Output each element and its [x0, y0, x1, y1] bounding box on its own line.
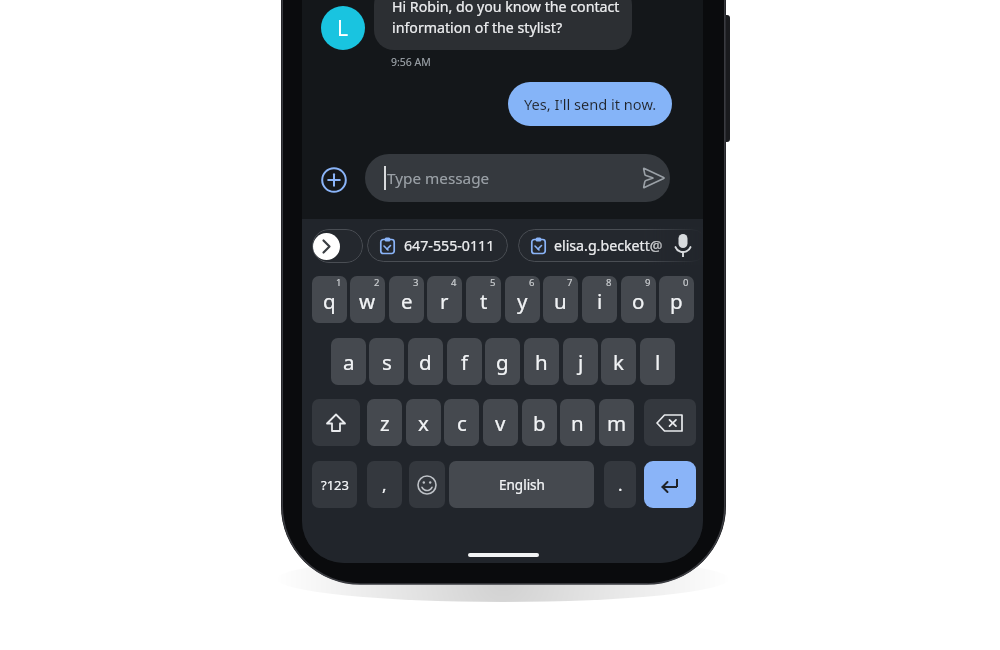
button[interactable]: o — [621, 276, 656, 323]
staticText: . — [618, 473, 623, 496]
staticText: o — [632, 287, 645, 315]
staticText: h — [535, 348, 548, 376]
staticText: v — [495, 409, 506, 437]
button[interactable]: f — [447, 338, 482, 385]
button[interactable]: i — [582, 276, 617, 323]
button[interactable]: p — [659, 276, 694, 323]
button[interactable]: Yes, I'll send it now. — [508, 82, 672, 126]
staticText: p — [670, 287, 683, 315]
button[interactable]: English — [449, 461, 594, 508]
staticText: L — [337, 14, 349, 43]
staticText: t — [480, 287, 488, 315]
staticText: w — [359, 287, 376, 315]
button[interactable]: , — [367, 461, 402, 508]
button[interactable]: l — [640, 338, 675, 385]
staticText: 6 — [529, 276, 535, 289]
staticText: 9:56 AM — [391, 55, 431, 69]
staticText: , — [382, 473, 387, 496]
button[interactable]: Hi Robin, do you know the contact inform… — [374, 0, 632, 50]
button[interactable]: s — [369, 338, 404, 385]
button[interactable]: ?123 — [312, 461, 357, 508]
staticText: i — [597, 287, 603, 315]
button[interactable]: elisa.g.beckett@ — [518, 229, 703, 262]
button[interactable]: j — [563, 338, 598, 385]
button[interactable]: c — [444, 399, 479, 446]
button[interactable]: t — [466, 276, 501, 323]
staticText: elisa.g.beckett@ — [554, 236, 663, 255]
staticText: 7 — [567, 276, 573, 289]
staticText: g — [496, 348, 509, 376]
button[interactable]: m — [599, 399, 634, 446]
staticText: 2 — [374, 276, 380, 289]
staticText: e — [401, 287, 413, 315]
staticText: b — [533, 409, 546, 437]
button[interactable]: k — [601, 338, 636, 385]
button[interactable]: v — [483, 399, 518, 446]
staticText: u — [554, 287, 567, 315]
button[interactable]: a — [331, 338, 366, 385]
button[interactable]: L — [321, 6, 365, 50]
button[interactable]: 647-555-0111 — [367, 229, 508, 262]
staticText: n — [571, 409, 584, 437]
staticText: c — [457, 409, 467, 437]
staticText: Hi Robin, do you know the contact inform… — [392, 0, 620, 38]
staticText: x — [418, 409, 429, 437]
staticText: 0 — [683, 276, 689, 289]
staticText: Yes, I'll send it now. — [524, 94, 657, 114]
button[interactable]: y — [505, 276, 540, 323]
staticText: j — [578, 348, 584, 376]
staticText: ?123 — [321, 476, 349, 494]
button[interactable]: Type message — [365, 154, 670, 202]
button[interactable]: w — [350, 276, 385, 323]
staticText: l — [655, 348, 661, 376]
button[interactable]: e — [389, 276, 424, 323]
button[interactable]: n — [560, 399, 595, 446]
staticText: d — [419, 348, 432, 376]
button[interactable] — [644, 461, 696, 508]
button[interactable]: u — [543, 276, 578, 323]
button[interactable] — [313, 233, 340, 260]
staticText: m — [607, 409, 627, 437]
button[interactable]: q — [312, 276, 347, 323]
button[interactable]: h — [524, 338, 559, 385]
button[interactable]: . — [604, 461, 636, 508]
staticText: 8 — [606, 276, 612, 289]
button[interactable] — [312, 399, 360, 446]
button[interactable]: d — [408, 338, 443, 385]
staticText: English — [499, 476, 545, 494]
staticText: 5 — [490, 276, 496, 289]
button[interactable]: b — [522, 399, 557, 446]
button[interactable] — [322, 168, 346, 192]
staticText: 1 — [336, 276, 342, 289]
button[interactable]: z — [367, 399, 402, 446]
staticText: s — [382, 348, 392, 376]
staticText: a — [343, 348, 355, 376]
button[interactable] — [409, 461, 445, 508]
staticText: z — [380, 409, 390, 437]
staticText: y — [517, 287, 528, 315]
button[interactable]: x — [406, 399, 441, 446]
staticText: 647-555-0111 — [404, 236, 495, 255]
staticText: r — [440, 287, 449, 315]
staticText: 3 — [413, 276, 419, 289]
staticText: k — [613, 348, 624, 376]
staticText: q — [323, 287, 336, 315]
staticText: 4 — [451, 276, 457, 289]
staticText: Type message — [387, 168, 490, 189]
button[interactable] — [644, 399, 696, 446]
button[interactable]: r — [427, 276, 462, 323]
staticText: f — [461, 348, 469, 376]
staticText: 9 — [645, 276, 651, 289]
button[interactable]: g — [485, 338, 520, 385]
